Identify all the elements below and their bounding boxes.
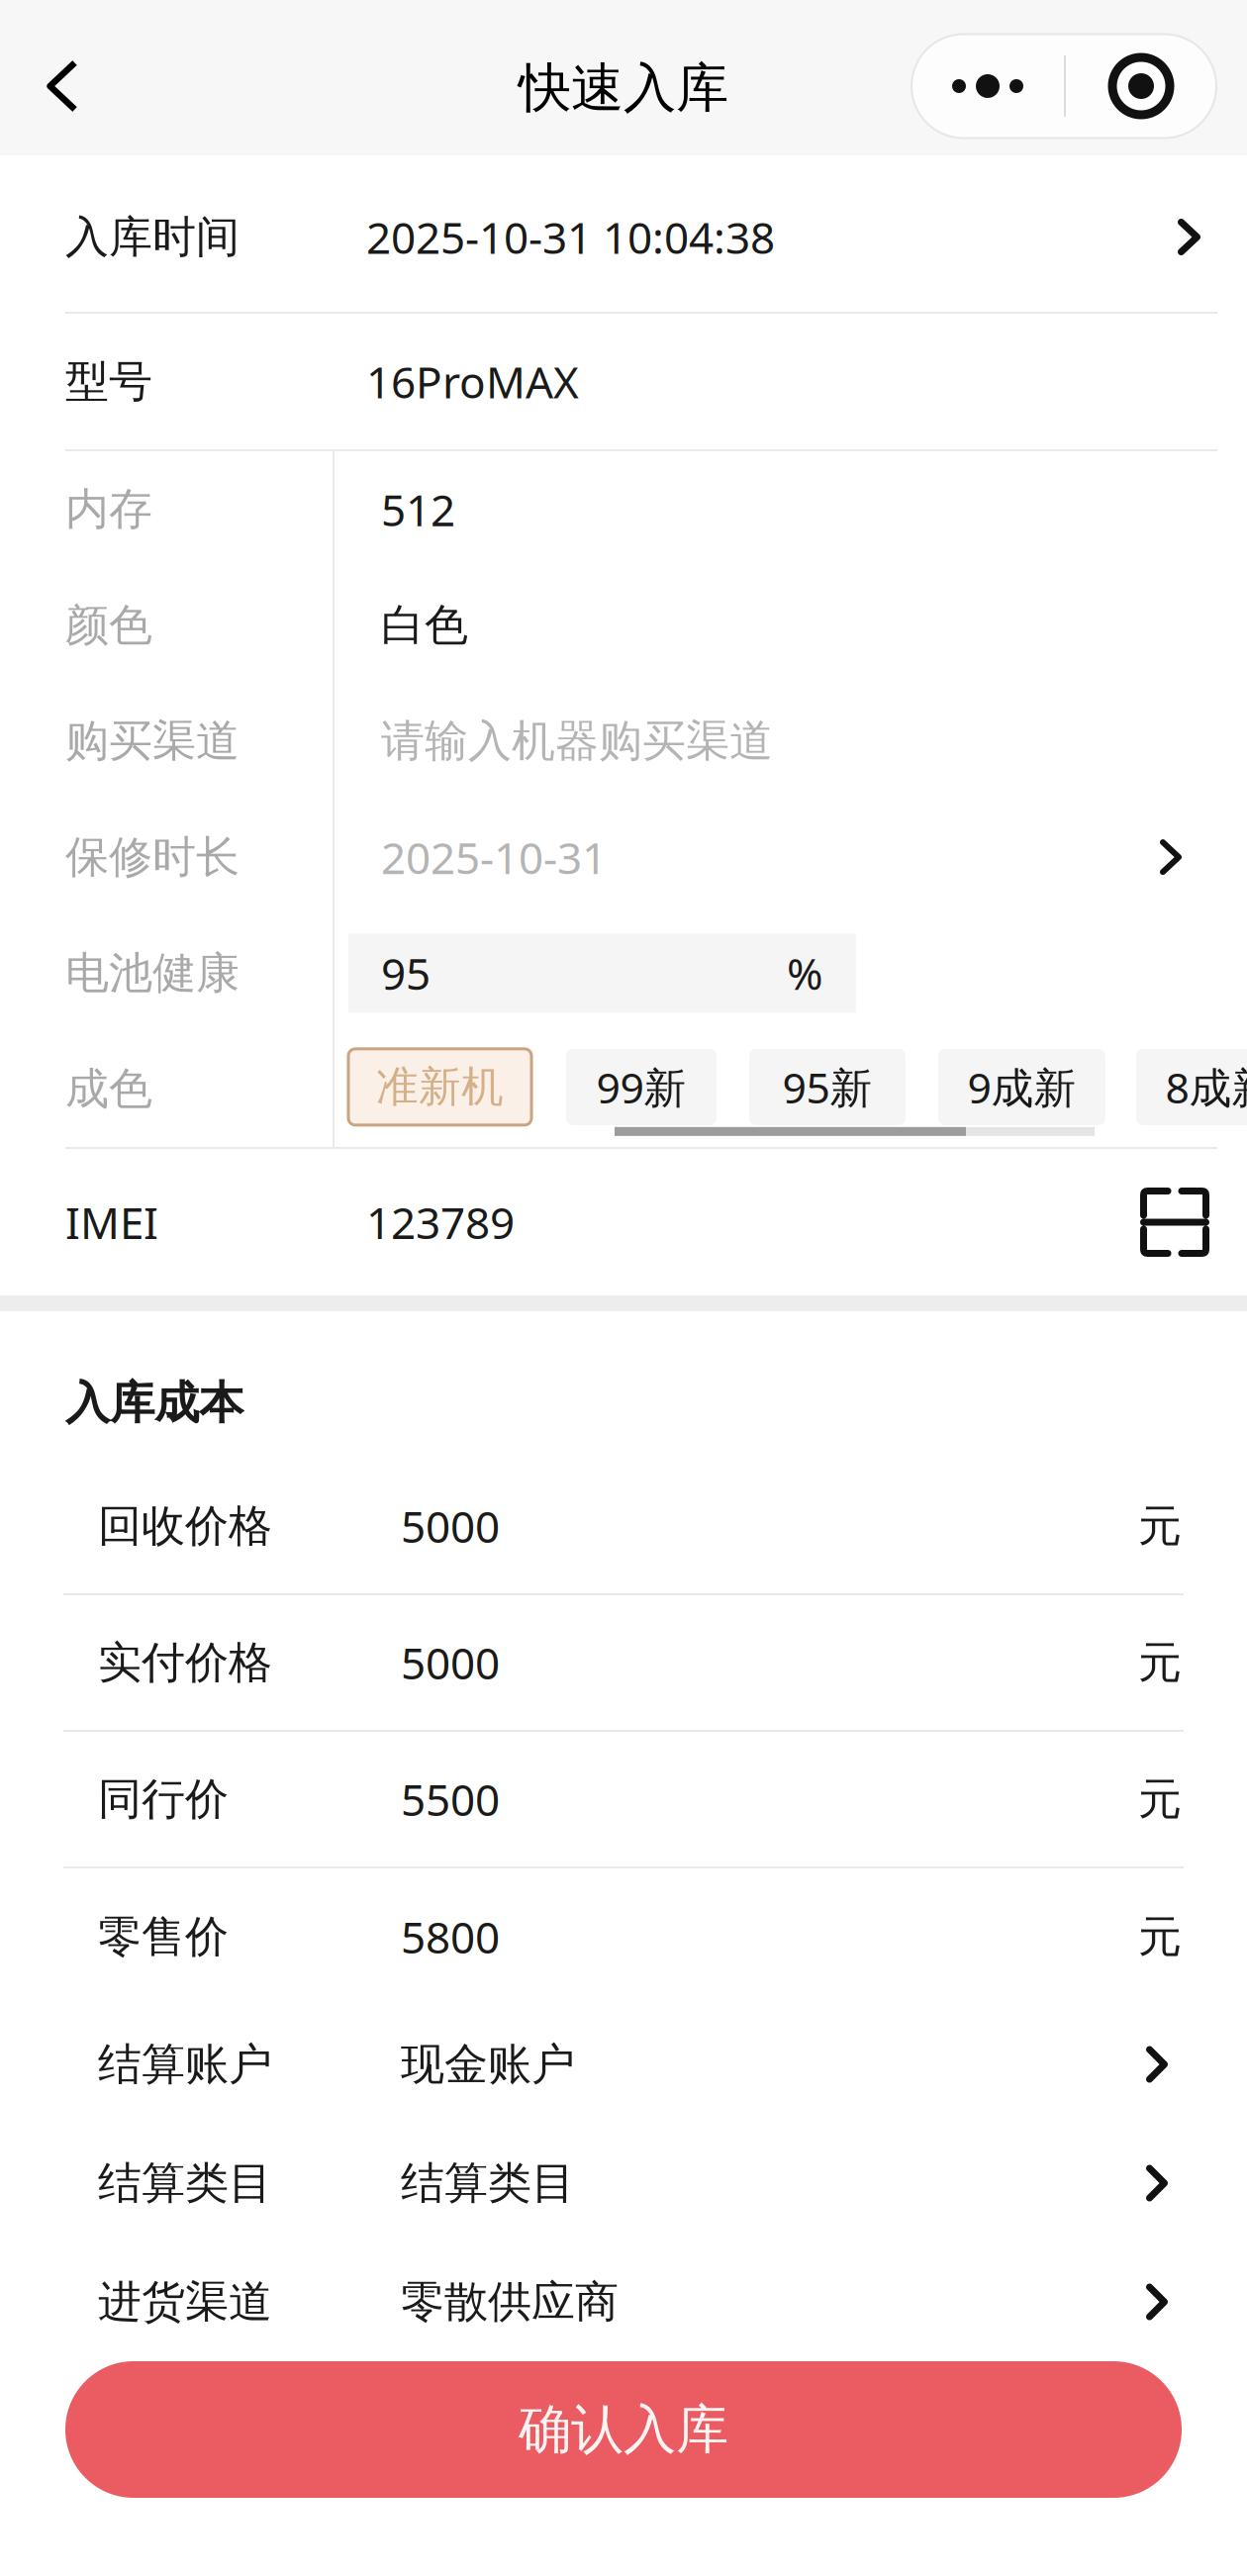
staticText: 内存 (65, 482, 152, 537)
button[interactable]: IMEI (0, 1149, 1247, 1295)
staticText: 型号 (65, 354, 152, 409)
button[interactable]: 回收价格 (0, 1459, 1247, 1593)
staticText: 512 (381, 480, 455, 539)
staticText: 请输入机器购买渠道 (381, 714, 773, 769)
staticText: 结算类目 (98, 2156, 272, 2211)
staticText: 白色 (381, 598, 468, 653)
staticText: 5500 (401, 1769, 500, 1829)
staticText: 123789 (366, 1193, 515, 1252)
button[interactable]: 8成新 (1136, 1049, 1247, 1125)
staticText: 实付价格 (98, 1635, 272, 1690)
staticText: IMEI (65, 1193, 158, 1252)
staticText: 现金账户 (401, 2037, 575, 2092)
button[interactable]: 型号 (0, 314, 1247, 449)
button[interactable]: 95新 (749, 1049, 906, 1125)
staticText: 购买渠道 (65, 714, 240, 769)
staticText: 确认入库 (519, 2396, 728, 2463)
button[interactable]: 9成新 (938, 1049, 1105, 1125)
staticText: 9成新 (967, 1058, 1076, 1116)
staticText: 元 (1138, 1909, 1182, 1964)
staticText: 元 (1138, 1772, 1182, 1827)
button[interactable]: 入库时间 (0, 162, 1247, 312)
staticText: 元 (1138, 1499, 1182, 1553)
staticText: 入库成本 (65, 1375, 243, 1431)
staticText: 元 (1138, 1635, 1182, 1690)
staticText: 准新机 (376, 1060, 504, 1114)
button[interactable]: 准新机 (348, 1049, 531, 1125)
staticText: 保修时长 (65, 830, 240, 885)
button[interactable]: 进货渠道 (0, 2242, 1247, 2361)
button[interactable]: 99新 (566, 1049, 717, 1125)
staticText: 99新 (596, 1058, 686, 1116)
staticText: 零售价 (98, 1909, 229, 1964)
staticText: 5000 (401, 1633, 500, 1692)
staticText: 快速入库 (519, 55, 728, 121)
staticText: 8成新 (1165, 1058, 1247, 1116)
staticText: 回收价格 (98, 1499, 272, 1553)
button[interactable]: 实付价格 (0, 1595, 1247, 1730)
staticText: 零散供应商 (401, 2274, 619, 2329)
button[interactable]: 结算类目 (0, 2124, 1247, 2242)
button[interactable]: 同行价 (0, 1732, 1247, 1866)
button[interactable]: 零售价 (0, 1868, 1247, 2005)
staticText: 同行价 (98, 1772, 229, 1827)
staticText: 进货渠道 (98, 2274, 272, 2329)
button[interactable]: 结算账户 (0, 2005, 1247, 2124)
staticText: 95新 (782, 1058, 872, 1116)
staticText: 结算类目 (401, 2156, 575, 2211)
staticText: 2025-10-31 10:04:38 (366, 207, 775, 267)
staticText: 颜色 (65, 598, 152, 653)
button[interactable]: Back (0, 34, 124, 138)
staticText: 电池健康 (65, 946, 240, 1001)
staticText: 入库时间 (65, 210, 240, 264)
staticText: 2025-10-31 (381, 827, 607, 887)
button[interactable]: More options (911, 34, 1216, 138)
staticText: 16ProMAX (366, 352, 579, 411)
staticText: % (787, 943, 823, 1003)
staticText: 95 (381, 943, 431, 1003)
button[interactable]: 确认入库 (65, 2361, 1182, 2498)
staticText: 5800 (401, 1907, 500, 1966)
staticText: 成色 (65, 1062, 152, 1116)
staticText: 5000 (401, 1496, 500, 1556)
staticText: 结算账户 (98, 2037, 272, 2092)
